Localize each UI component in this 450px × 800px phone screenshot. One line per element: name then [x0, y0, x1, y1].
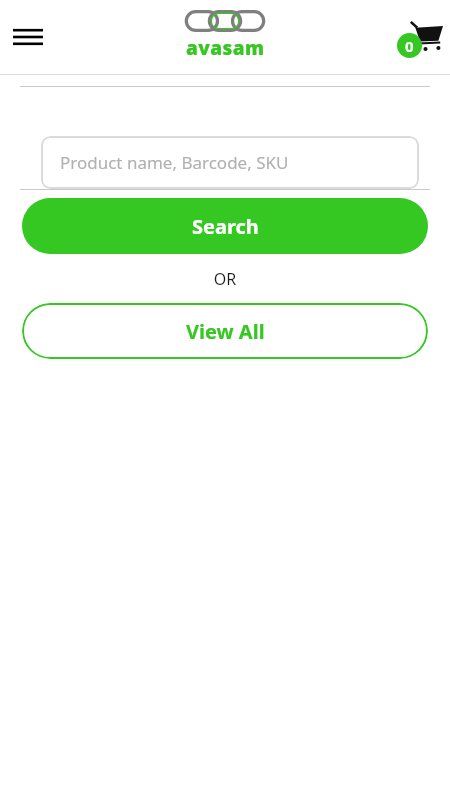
- staticText: Product name, Barcode, SKU: [60, 151, 289, 174]
- staticText: 0: [405, 36, 414, 56]
- staticText: OR: [0, 268, 450, 290]
- staticText: View All: [186, 318, 265, 345]
- staticText: avasam: [186, 35, 265, 61]
- button[interactable]: View All: [22, 303, 428, 359]
- staticText: Search: [192, 213, 259, 240]
- button[interactable]: Menu: [6, 15, 50, 59]
- button[interactable]: Avasam home: [181, 10, 269, 61]
- button[interactable]: Search: [22, 198, 428, 254]
- button[interactable]: Cart, 0 items: [394, 11, 446, 63]
- button[interactable]: Product name, Barcode, SKU: [41, 136, 419, 189]
